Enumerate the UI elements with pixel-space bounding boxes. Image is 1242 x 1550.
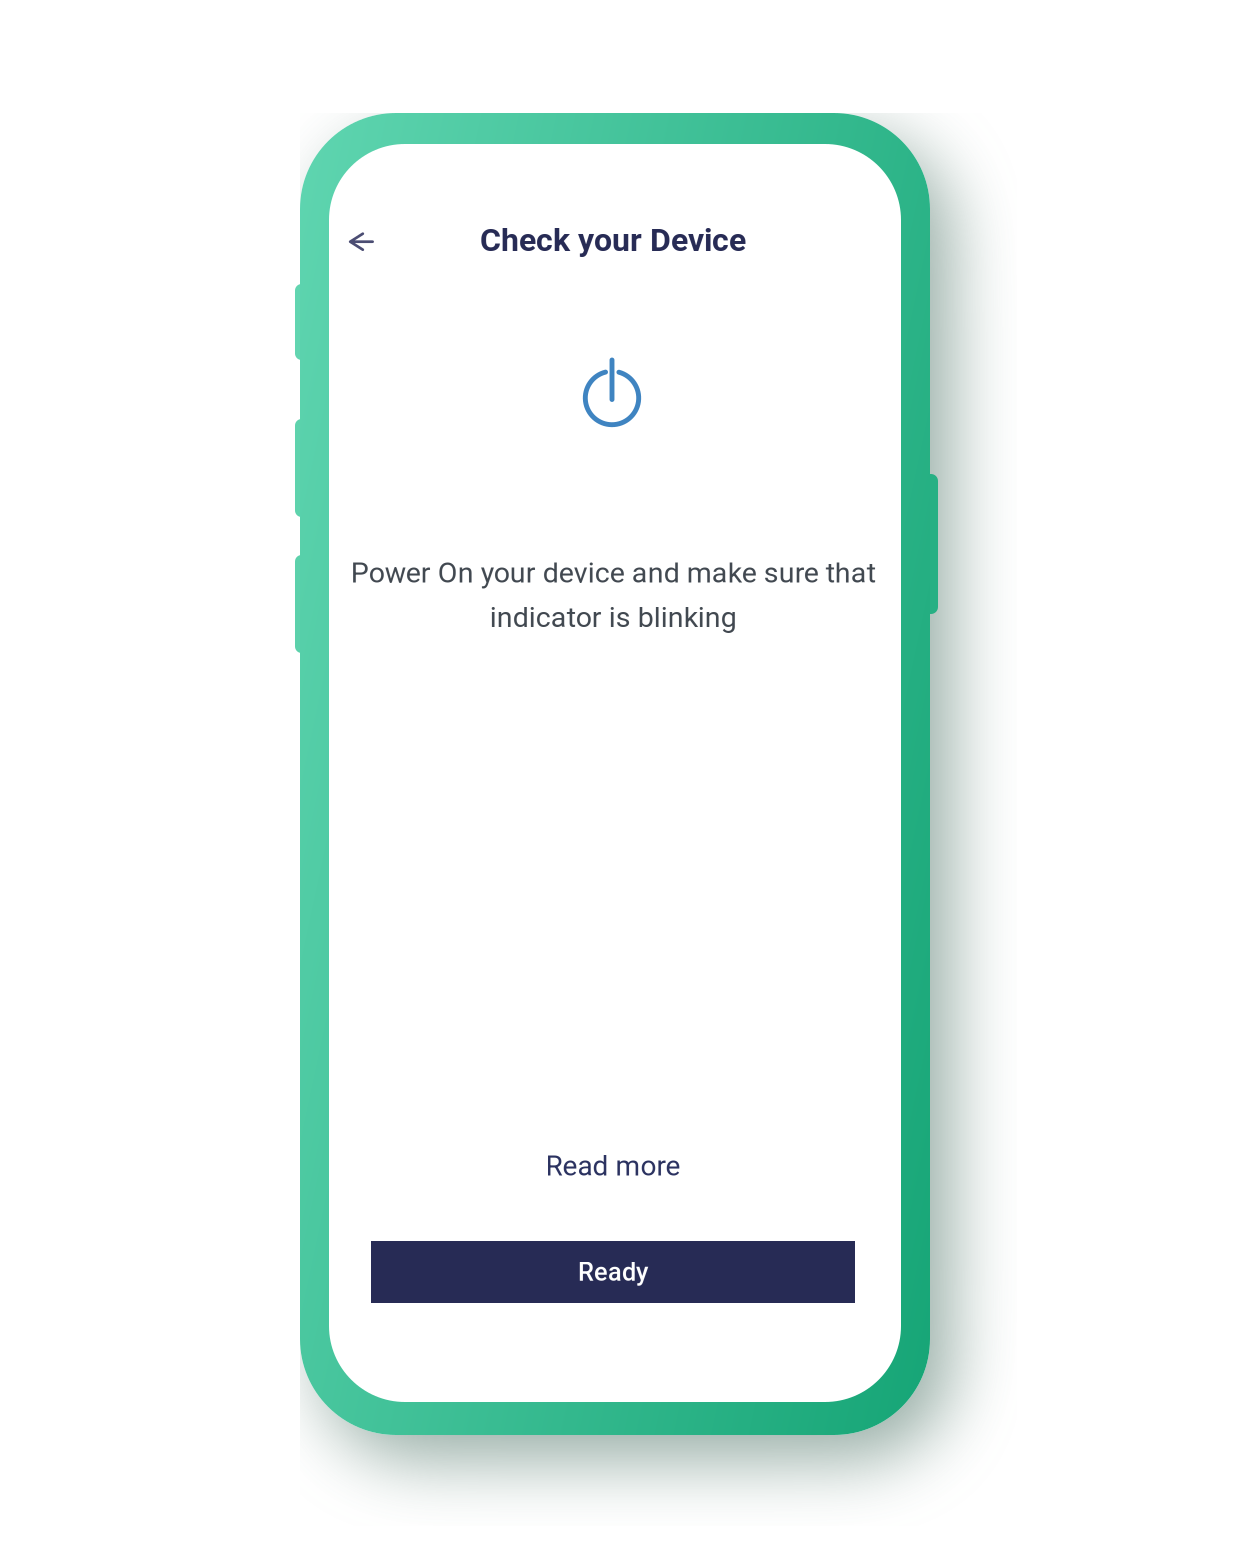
button[interactable]: Back [333,214,389,270]
staticText: Read more [545,1150,680,1182]
button[interactable]: Read more [503,1137,723,1195]
staticText: Ready [578,1257,648,1287]
staticText: Power On your device and make sure that … [350,556,875,634]
button[interactable]: Ready [371,1241,855,1303]
staticText: Check your Device [480,221,746,259]
